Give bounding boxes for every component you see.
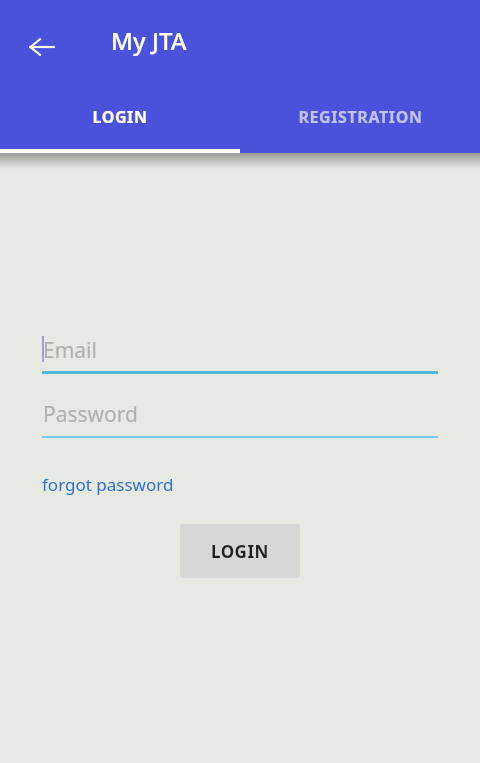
staticText: Email (43, 336, 97, 365)
button[interactable]: Password (42, 394, 438, 438)
button[interactable]: REGISTRATION (240, 80, 480, 153)
staticText: forgot password (42, 473, 174, 496)
button[interactable]: LOGIN (180, 524, 300, 578)
staticText: REGISTRATION (298, 106, 423, 128)
staticText: LOGIN (211, 540, 269, 563)
button[interactable]: Email (42, 330, 438, 374)
staticText: LOGIN (92, 106, 148, 128)
button[interactable]: Back (18, 23, 66, 71)
staticText: Password (43, 400, 138, 429)
button[interactable]: forgot password (42, 473, 174, 496)
button[interactable]: LOGIN (0, 80, 240, 153)
staticText: My JTA (111, 24, 187, 57)
